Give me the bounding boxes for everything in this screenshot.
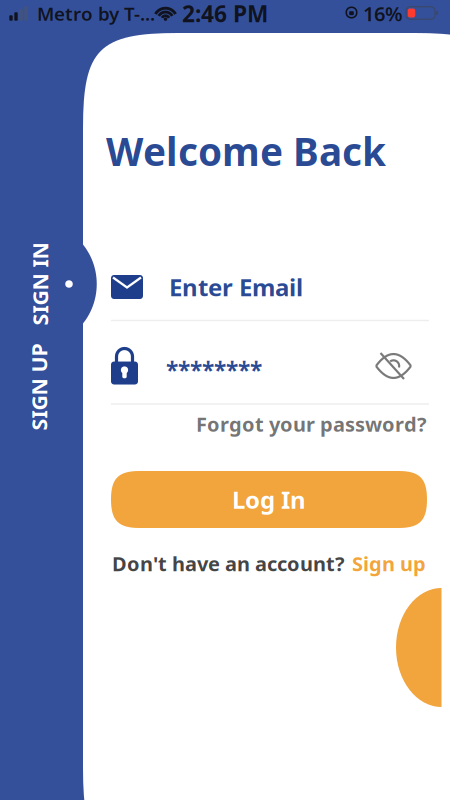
button[interactable]: Enter Email xyxy=(111,271,427,303)
staticText: Enter Email xyxy=(169,271,303,303)
staticText: 16% xyxy=(363,0,403,27)
button[interactable]: SIGN UP xyxy=(0,373,82,401)
staticText: 2:46 PM xyxy=(182,0,268,28)
staticText: Don't have an account? xyxy=(112,550,345,577)
staticText: ******** xyxy=(166,355,262,385)
button[interactable]: Sign up xyxy=(352,550,426,577)
staticText: Sign up xyxy=(352,550,426,577)
staticText: Log In xyxy=(232,484,306,515)
button[interactable]: SIGN IN xyxy=(0,270,81,298)
staticText: Forgot your password? xyxy=(196,411,427,437)
staticText: Welcome Back xyxy=(106,125,386,177)
button[interactable]: Log In xyxy=(111,471,427,528)
staticText: SIGN IN xyxy=(0,270,81,298)
staticText: Metro by T-... xyxy=(37,1,155,26)
button[interactable] xyxy=(376,353,411,379)
staticText: SIGN UP xyxy=(0,373,82,401)
button[interactable]: ******** xyxy=(111,347,427,384)
button[interactable]: Forgot your password? xyxy=(196,411,427,437)
